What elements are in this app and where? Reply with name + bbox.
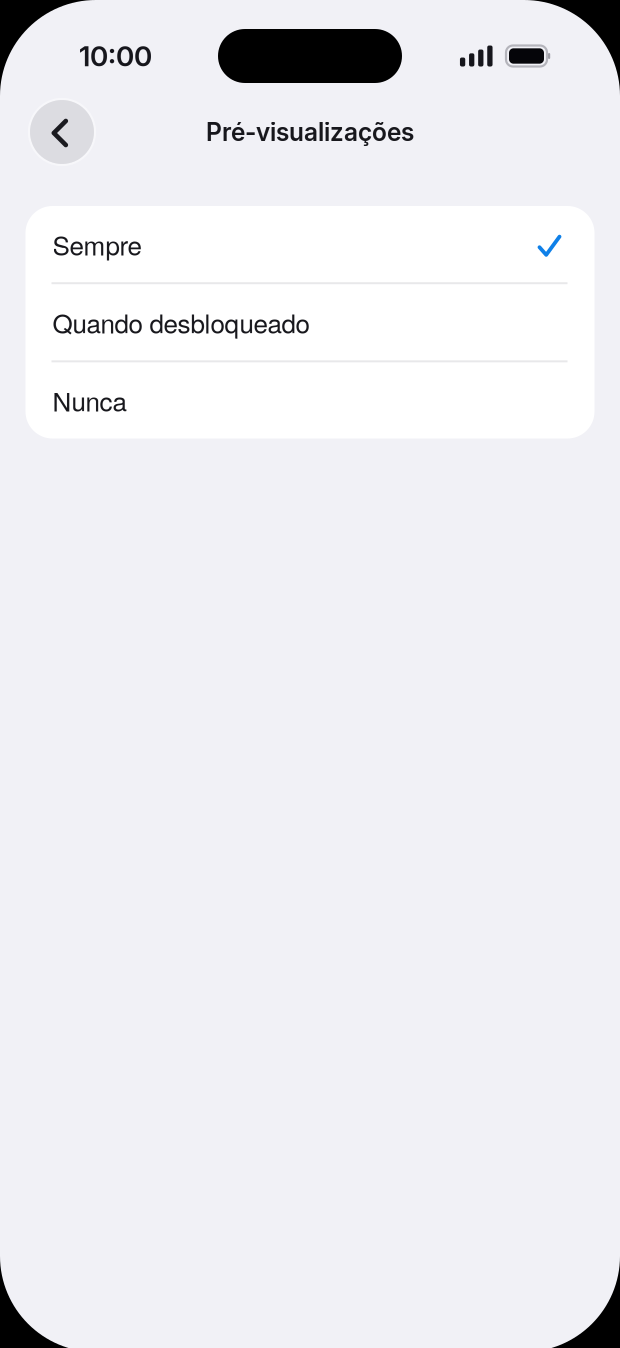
staticText: Pré-visualizações (206, 117, 414, 147)
button[interactable]: Nunca (25, 362, 594, 438)
button[interactable]: Back (30, 100, 94, 164)
staticText: Sempre (52, 225, 141, 263)
staticText: 10:00 (79, 39, 152, 73)
button[interactable]: Sempre (25, 206, 594, 282)
staticText: Quando desbloqueado (52, 304, 309, 341)
button[interactable]: Quando desbloqueado (25, 284, 594, 360)
staticText: Nunca (52, 382, 126, 419)
